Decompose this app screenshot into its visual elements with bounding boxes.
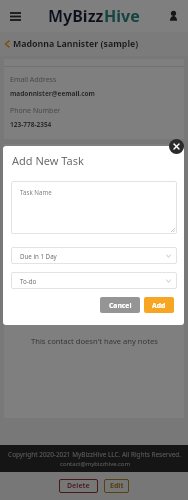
staticText: Add xyxy=(152,301,166,310)
button[interactable]: Due in 1 Day xyxy=(11,247,177,264)
staticText: Task Name xyxy=(20,188,52,196)
staticText: 123-778-2354 xyxy=(10,120,52,129)
staticText: Phone Number xyxy=(10,106,61,116)
staticText: Hive xyxy=(104,5,140,27)
button[interactable]: To-do xyxy=(11,272,177,289)
staticText: This contact doesn't have any notes xyxy=(31,336,158,346)
staticText: MyBizz xyxy=(48,5,104,27)
button[interactable]: Add xyxy=(144,297,174,313)
staticText: Email Address xyxy=(10,75,57,85)
staticText: Copyright 2020-2021 MyBizzHive LLC. All … xyxy=(8,450,181,459)
staticText: Edit xyxy=(110,481,124,491)
button[interactable]: Edit xyxy=(104,479,129,493)
staticText: Add New Task xyxy=(12,153,84,168)
staticText: contact@mybizzhive.com xyxy=(60,460,130,468)
staticText: madonnister@eemail.com xyxy=(10,89,95,98)
staticText: To-do xyxy=(20,277,37,285)
button[interactable]: Menu xyxy=(7,8,23,24)
button[interactable]: Account xyxy=(165,8,181,24)
staticText: Delete xyxy=(67,481,90,491)
staticText: Madonna Lannister (sample) xyxy=(13,38,139,50)
button[interactable]: Madonna Lannister (sample) xyxy=(0,32,188,56)
button[interactable]: Delete xyxy=(59,479,98,493)
button[interactable]: Cancel xyxy=(100,297,140,313)
button[interactable]: Task Name xyxy=(11,181,177,234)
staticText: Due in 1 Day xyxy=(20,252,57,260)
button[interactable]: Close xyxy=(169,139,184,154)
staticText: Cancel xyxy=(109,301,132,310)
